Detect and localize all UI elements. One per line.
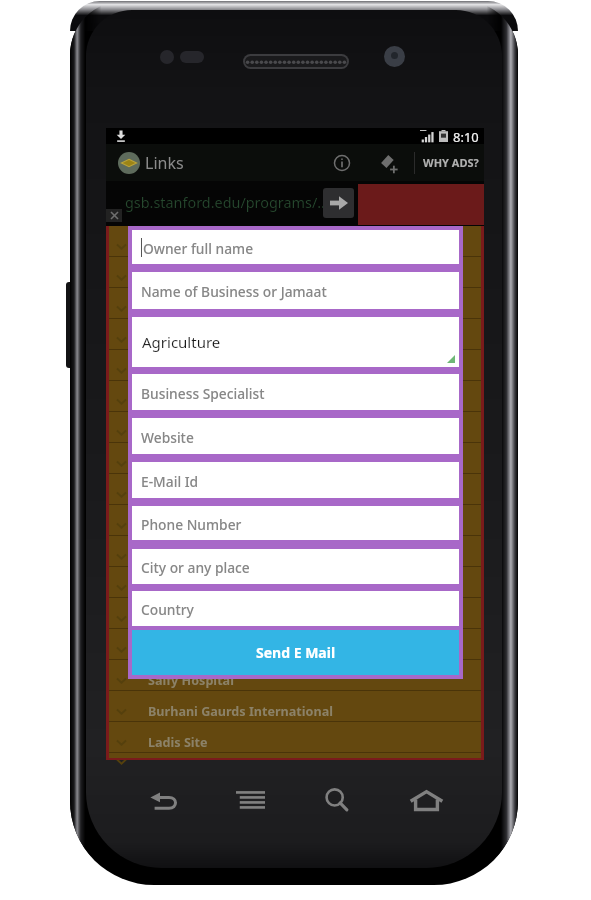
button[interactable]: Country <box>132 591 459 626</box>
button[interactable] <box>109 257 481 287</box>
button[interactable]: E-Mail Id <box>132 462 459 498</box>
button[interactable]: Saify Hospital <box>109 660 481 690</box>
button[interactable]: City or any place <box>132 549 459 584</box>
staticText: Saify Hospital <box>148 672 234 689</box>
staticText: Website <box>141 428 194 447</box>
button[interactable]: Send E Mail <box>132 630 459 675</box>
button[interactable]: Agriculture <box>132 317 459 367</box>
button[interactable] <box>109 412 481 442</box>
button[interactable]: Search <box>324 787 350 813</box>
button[interactable] <box>109 567 481 597</box>
button[interactable] <box>109 474 481 504</box>
staticText: City or any place <box>141 558 250 577</box>
staticText: E-Mail Id <box>141 472 199 491</box>
button[interactable] <box>109 753 481 760</box>
button[interactable]: Owner full name <box>132 230 459 264</box>
button[interactable]: Go <box>323 188 354 218</box>
button[interactable]: Menu <box>236 790 265 810</box>
button[interactable] <box>109 350 481 380</box>
button[interactable] <box>109 629 481 659</box>
staticText: Agriculture <box>142 332 221 352</box>
staticText: 8:10 <box>453 128 479 144</box>
staticText: Links <box>145 152 184 174</box>
staticText: Burhani Gaurds International <box>148 703 333 720</box>
staticText: Name of Business or Jamaat <box>141 282 327 301</box>
button[interactable]: WHY ADS? <box>415 155 484 170</box>
button[interactable]: Close ad <box>106 209 122 222</box>
button[interactable] <box>109 536 481 566</box>
staticText: Ladis Site <box>148 734 208 751</box>
button[interactable]: Phone Number <box>132 506 459 540</box>
button[interactable] <box>109 443 481 473</box>
staticText: Business Specialist <box>141 384 265 403</box>
staticText: WHY ADS? <box>423 155 479 170</box>
staticText: gsb.stanford.edu/programs/… <box>125 193 329 213</box>
button[interactable]: Burhani Gaurds International <box>109 691 481 721</box>
button[interactable] <box>109 598 481 628</box>
button[interactable]: Ladis Site <box>109 722 481 752</box>
button[interactable]: Website <box>132 418 459 454</box>
staticText: Phone Number <box>141 515 242 534</box>
button[interactable]: Name of Business or Jamaat <box>132 272 459 309</box>
button[interactable]: Add tag <box>376 150 402 176</box>
staticText: Country <box>141 600 194 619</box>
button[interactable]: Back <box>148 787 178 813</box>
button[interactable] <box>109 226 481 256</box>
button[interactable] <box>109 381 481 411</box>
button[interactable]: Home <box>410 789 443 811</box>
staticText: Owner full name <box>143 239 254 258</box>
button[interactable]: Business Specialist <box>132 374 459 410</box>
button[interactable]: Info <box>328 149 356 177</box>
button[interactable] <box>109 505 481 535</box>
button[interactable] <box>109 319 481 349</box>
button[interactable] <box>109 288 481 318</box>
staticText: Send E Mail <box>256 643 336 662</box>
